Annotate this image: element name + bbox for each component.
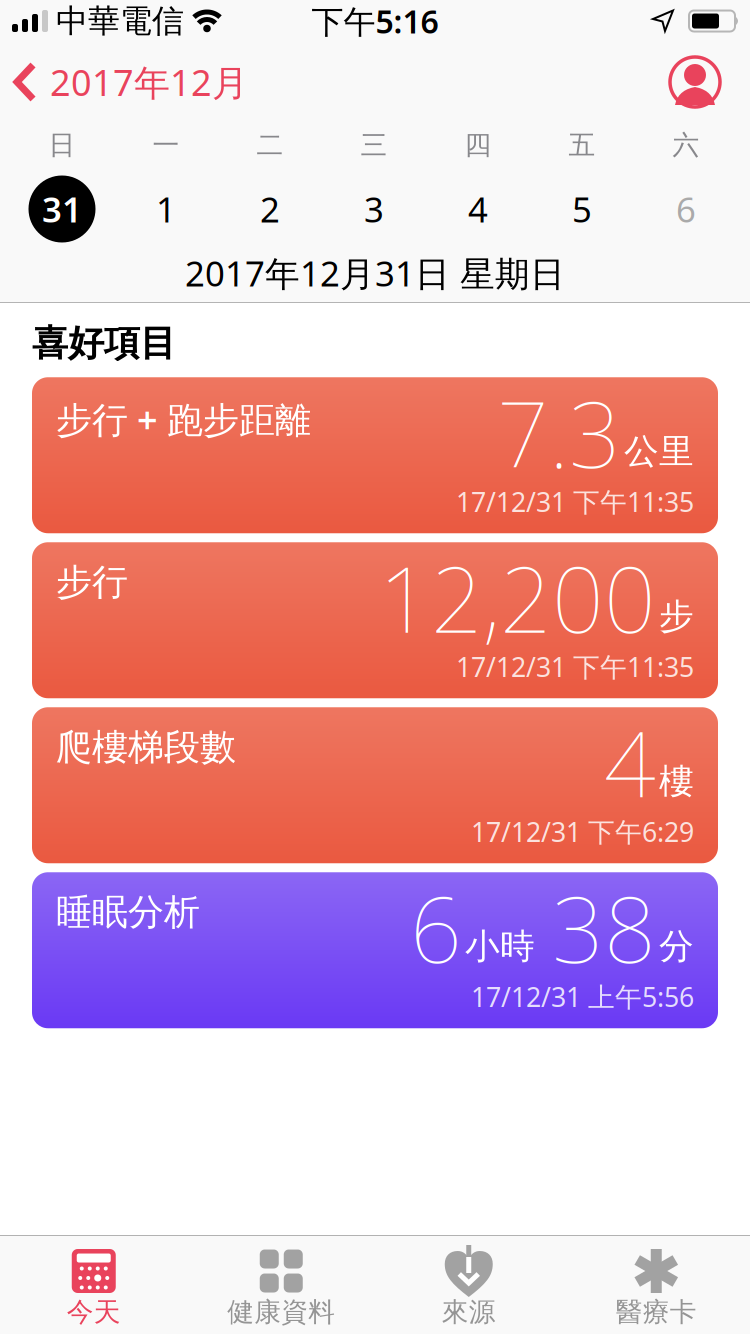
staticText: 2017年12月 <box>50 58 248 106</box>
button[interactable]: 睡眠分析 <box>32 872 718 1028</box>
staticText: 7.3 <box>497 372 621 493</box>
button[interactable]: 31 <box>10 168 114 250</box>
staticText: 步 <box>659 595 694 638</box>
staticText: 6 <box>410 867 462 988</box>
button[interactable]: 4 <box>426 168 530 250</box>
staticText: 中華電信 <box>56 1 184 41</box>
staticText: 31 <box>42 186 82 232</box>
button[interactable]: 6 <box>634 168 738 250</box>
button[interactable]: 今天 <box>0 1245 187 1325</box>
staticText: 38 <box>552 867 656 988</box>
staticText: 4 <box>468 186 488 232</box>
staticText: 小時 <box>465 925 535 968</box>
button[interactable]: 健康資料 <box>187 1245 375 1325</box>
staticText: 3 <box>364 186 384 232</box>
staticText: 17/12/31 下午6:29 <box>471 814 694 849</box>
staticText: 一 <box>152 129 179 161</box>
staticText: 五 <box>568 129 595 161</box>
staticText: 喜好項目 <box>32 321 176 365</box>
staticText: 6 <box>676 186 696 232</box>
staticText: 六 <box>672 129 699 161</box>
button[interactable]: 來源 <box>375 1245 562 1325</box>
staticText: 四 <box>464 129 491 161</box>
button[interactable]: 3 <box>322 168 426 250</box>
staticText: 步行 + 跑步距離 <box>56 395 311 443</box>
button[interactable]: 醫療卡 <box>562 1245 750 1325</box>
staticText: 17/12/31 上午5:56 <box>471 979 694 1014</box>
button[interactable]: 步行 + 跑步距離 <box>32 377 718 533</box>
staticText: 17/12/31 下午11:35 <box>456 484 694 519</box>
button[interactable]: 5 <box>530 168 634 250</box>
staticText: 12,200 <box>379 537 656 658</box>
staticText: 醫療卡 <box>616 1296 697 1328</box>
staticText: 步行 <box>56 560 128 604</box>
button[interactable]: 1 <box>114 168 218 250</box>
staticText: 健康資料 <box>227 1296 335 1328</box>
staticText: 1 <box>156 186 176 232</box>
staticText: 二 <box>256 129 283 161</box>
button[interactable]: 步行 <box>32 542 718 698</box>
staticText: 睡眠分析 <box>56 890 200 934</box>
staticText: 日 <box>48 129 75 161</box>
staticText: 2017年12月31日 星期日 <box>185 250 565 296</box>
staticText: 樓 <box>659 760 694 803</box>
staticText: 下午5:16 <box>311 0 438 42</box>
staticText: 5 <box>572 186 592 232</box>
staticText: 來源 <box>442 1296 496 1328</box>
staticText: 2 <box>260 186 280 232</box>
staticText: 17/12/31 下午11:35 <box>456 649 694 684</box>
staticText: 三 <box>360 129 387 161</box>
staticText: 4 <box>604 702 656 823</box>
button[interactable]: 2 <box>218 168 322 250</box>
button[interactable]: 2017年12月 <box>14 58 248 106</box>
staticText: 爬樓梯段數 <box>56 725 236 769</box>
staticText: 分 <box>659 925 694 968</box>
staticText: 今天 <box>67 1296 121 1328</box>
button[interactable]: 爬樓梯段數 <box>32 707 718 863</box>
button[interactable]: 健康檔案 <box>670 57 720 107</box>
staticText: 公里 <box>624 430 694 473</box>
